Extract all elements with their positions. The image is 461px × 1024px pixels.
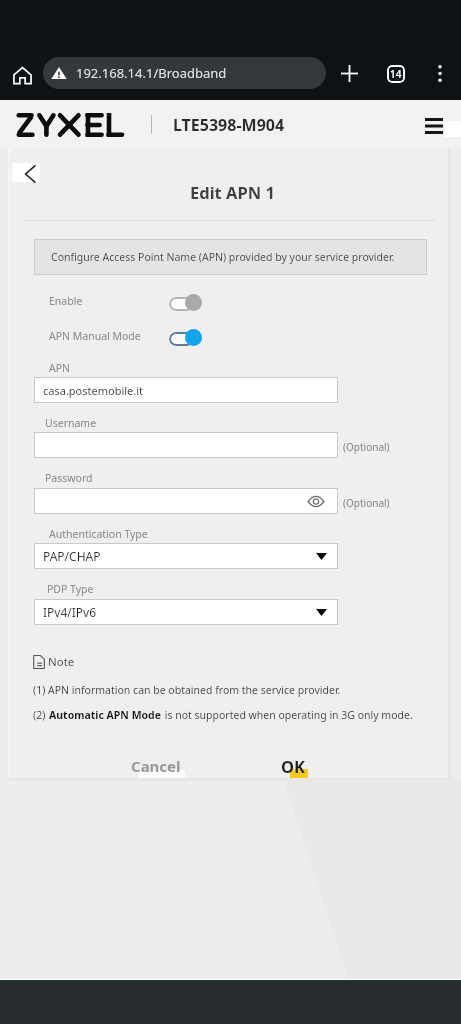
- staticText: (Optional): [343, 496, 390, 510]
- staticText: APN Manual Mode: [49, 329, 141, 343]
- button[interactable]: PAP/CHAP: [34, 543, 338, 569]
- button[interactable]: casa.postemobile.it: [34, 377, 338, 403]
- staticText: Enable: [49, 294, 83, 308]
- button[interactable]: Home: [5, 58, 39, 92]
- button[interactable]: Cancel: [110, 753, 202, 778]
- staticText: PDP Type: [47, 582, 94, 596]
- staticText: IPv4/IPv6: [43, 604, 97, 620]
- button[interactable]: OK: [248, 752, 338, 779]
- staticText: APN: [49, 361, 71, 375]
- staticText: (Optional): [343, 440, 390, 454]
- staticText: Username: [45, 416, 97, 430]
- button[interactable]: IPv4/IPv6: [34, 599, 338, 625]
- staticText: Edit APN 1: [190, 181, 275, 203]
- button[interactable]: Menu: [417, 109, 450, 142]
- button[interactable]: 192.168.14.1/Broadband: [43, 57, 326, 89]
- staticText: is not supported when operating in 3G on…: [162, 708, 413, 722]
- button[interactable]: [34, 488, 338, 514]
- button[interactable]: [34, 432, 338, 458]
- button[interactable]: Tabs: [379, 57, 412, 90]
- staticText: casa.postemobile.it: [43, 383, 144, 398]
- staticText: (2): [33, 708, 49, 722]
- staticText: Cancel: [131, 756, 181, 776]
- staticText: Note: [48, 654, 75, 670]
- button[interactable]: More options: [423, 57, 456, 90]
- staticText: 192.168.14.1/Broadband: [76, 64, 227, 82]
- staticText: PAP/CHAP: [43, 548, 101, 564]
- staticText: Automatic APN Mode: [49, 708, 162, 722]
- button[interactable]: Back: [13, 157, 46, 190]
- button[interactable]: Toggle off: [169, 293, 203, 311]
- staticText: (1) APN information can be obtained from…: [33, 683, 341, 697]
- staticText: LTE5398-M904: [173, 114, 285, 136]
- button[interactable]: Toggle on: [169, 328, 203, 346]
- staticText: Password: [45, 471, 93, 485]
- button[interactable]: New tab: [333, 57, 366, 90]
- staticText: Authentication Type: [49, 527, 148, 541]
- staticText: 14: [390, 67, 402, 81]
- staticText: OK: [281, 755, 306, 777]
- staticText: Configure Access Point Name (APN) provid…: [51, 250, 395, 264]
